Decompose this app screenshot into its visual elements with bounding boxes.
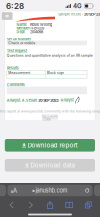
staticText: A (13, 187, 17, 194)
button[interactable]: a (7, 185, 92, 196)
button[interactable]: Share (40, 198, 60, 212)
button[interactable]: Tabs (79, 198, 98, 212)
button[interactable]: Download report (5, 139, 95, 152)
staticText: 6:28 (6, 1, 24, 11)
staticText: 2IR4098 (30, 30, 43, 34)
staticText: Rosie Willing (30, 22, 52, 27)
staticText: Measurement (8, 71, 30, 75)
staticText: Check or mobile (8, 41, 35, 45)
staticText: · 20 SEP 23 (82, 12, 100, 16)
button[interactable]: Forward (21, 198, 40, 212)
button[interactable]: Bookmarks (60, 198, 79, 212)
staticText: 1FB1029 (30, 26, 44, 30)
staticText: 4G (73, 2, 82, 10)
staticText: Comments (7, 83, 25, 87)
staticText: Block sign (47, 71, 64, 75)
staticText: Sample record (58, 12, 81, 16)
button[interactable]: Download data (5, 159, 95, 172)
staticText: Verify this report at www.janushb.com/ve… (0, 109, 100, 113)
staticText: 20 SEP 2023 (38, 98, 58, 103)
staticText: Analyst: A.Vellan (7, 98, 37, 103)
staticText: 8821-4GH9-22KK (42, 115, 58, 121)
staticText: Questions and quantitative analysis of a… (7, 53, 93, 57)
staticText: Name (16, 22, 26, 27)
staticText: Test request (7, 49, 27, 53)
staticText: a (11, 189, 13, 194)
button[interactable]: Back (2, 198, 21, 212)
staticText: Download data (31, 162, 75, 169)
staticText: janushb.com (36, 187, 68, 194)
staticText: Member (16, 26, 29, 30)
staticText: Dept (16, 30, 24, 34)
staticText: Serial Number (7, 37, 31, 41)
staticText: Analyst (60, 98, 73, 102)
staticText: Results (7, 66, 19, 70)
staticText: Download report (28, 142, 78, 149)
